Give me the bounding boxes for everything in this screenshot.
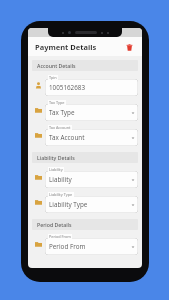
staticText: Period From bbox=[49, 234, 71, 239]
staticText: Payment Details bbox=[35, 42, 97, 52]
staticText: Tax Type bbox=[49, 100, 65, 105]
staticText: Liability bbox=[49, 175, 72, 184]
button[interactable]: Tax Type bbox=[32, 100, 138, 121]
button[interactable]: Liability Type bbox=[32, 192, 138, 213]
button[interactable]: Period From bbox=[32, 234, 138, 255]
staticText: Tpin bbox=[49, 75, 57, 80]
staticText: Liability Type bbox=[49, 200, 88, 209]
staticText: Period Details bbox=[37, 221, 72, 228]
button[interactable]: Tax Account bbox=[32, 125, 138, 146]
staticText: Liability Type bbox=[49, 192, 73, 197]
staticText: Tax Account bbox=[49, 125, 71, 130]
button[interactable]: Liability bbox=[32, 167, 138, 188]
staticText: Tax Type bbox=[49, 108, 75, 117]
staticText: Liability bbox=[49, 167, 63, 172]
staticText: Tax Account bbox=[49, 133, 85, 142]
button[interactable]: Delete bbox=[123, 41, 135, 53]
staticText: Period From bbox=[49, 242, 86, 251]
staticText: Account Details bbox=[37, 62, 76, 69]
staticText: 1005162683 bbox=[49, 83, 86, 92]
staticText: Liability Details bbox=[37, 154, 75, 161]
button[interactable]: 1005162683 bbox=[32, 75, 138, 96]
